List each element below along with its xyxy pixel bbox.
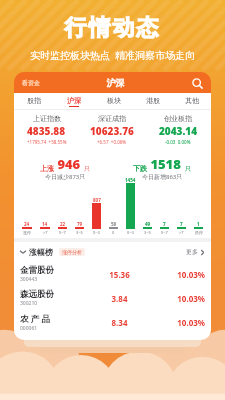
staticText: 今日减少873只: [45, 173, 86, 181]
staticText: 5~7: [59, 230, 66, 235]
button[interactable]: 上涨: [18, 151, 112, 185]
staticText: >7: [43, 230, 48, 235]
staticText: 5~7: [161, 230, 168, 235]
button[interactable]: 创业板指: [145, 114, 211, 145]
button[interactable]: 农 产 品: [14, 310, 211, 335]
staticText: 7: [163, 221, 166, 227]
staticText: 10623.76: [90, 124, 134, 138]
staticText: 沪深: [67, 96, 81, 105]
staticText: 沪深: [42, 77, 189, 88]
button[interactable]: 深证成指: [79, 114, 145, 145]
staticText: 上证指数: [33, 114, 61, 123]
button[interactable]: 其他: [172, 96, 211, 107]
staticText: 24: [24, 221, 30, 227]
staticText: 7: [180, 221, 183, 227]
staticText: +6.57 +0.06%: [97, 139, 127, 145]
button[interactable]: Search: [189, 75, 205, 91]
staticText: 15.36: [91, 269, 148, 280]
staticText: 上涨: [40, 164, 54, 173]
staticText: >7: [179, 230, 184, 235]
staticText: 只: [84, 165, 90, 173]
staticText: 涨停分析: [62, 249, 82, 255]
staticText: 14: [42, 221, 48, 227]
button[interactable]: 港股: [133, 96, 172, 107]
staticText: 49: [145, 221, 151, 227]
staticText: 只: [185, 165, 191, 173]
staticText: 22: [60, 221, 66, 227]
staticText: 涨停: [23, 230, 31, 235]
staticText: 1454: [125, 177, 136, 183]
staticText: 0~3: [93, 230, 100, 235]
staticText: 下跌: [133, 164, 147, 173]
staticText: 跌停: [195, 230, 203, 235]
staticText: 946: [54, 155, 84, 173]
staticText: 港股: [146, 96, 160, 105]
staticText: 000061: [20, 325, 38, 332]
staticText: 10.03%: [148, 317, 205, 328]
staticText: 2043.14: [159, 124, 198, 138]
staticText: 实时监控板块热点 精准洞察市场走向: [0, 48, 225, 62]
button[interactable]: 下跌: [112, 151, 211, 185]
staticText: 森远股份: [20, 289, 54, 300]
staticText: 8.34: [91, 317, 148, 328]
staticText: 板块: [107, 96, 121, 105]
staticText: 10.03%: [148, 269, 205, 280]
staticText: 79: [77, 221, 83, 227]
button[interactable]: 森远股份: [14, 286, 211, 310]
staticText: 1: [197, 221, 200, 227]
staticText: 更多: [186, 248, 198, 256]
staticText: 金雷股份: [20, 265, 54, 276]
staticText: -0.03 0.00%: [165, 139, 191, 145]
staticText: 0~3: [127, 230, 134, 235]
staticText: 涨幅榜: [29, 247, 53, 257]
staticText: 3.84: [91, 293, 148, 304]
staticText: 58: [111, 221, 117, 227]
staticText: 创业板指: [164, 114, 192, 123]
staticText: 3~5: [76, 230, 83, 235]
button[interactable]: 金雷股份: [14, 262, 211, 286]
staticText: 0: [112, 230, 115, 235]
staticText: 300443: [20, 276, 38, 283]
staticText: 行情动态: [0, 14, 225, 42]
staticText: 农 产 品: [20, 313, 50, 325]
staticText: +1795.74 +58.55%: [27, 139, 67, 145]
staticText: 其他: [185, 96, 199, 105]
staticText: 股指: [27, 96, 41, 105]
button[interactable]: 股指: [14, 96, 54, 107]
staticText: 807: [93, 197, 101, 203]
button[interactable]: 涨幅榜: [14, 242, 211, 262]
staticText: 300210: [20, 300, 38, 307]
button[interactable]: 板块: [94, 96, 133, 107]
button[interactable]: 看资金: [20, 77, 42, 89]
staticText: 1518: [147, 155, 185, 173]
staticText: 深证成指: [98, 114, 126, 123]
staticText: 3~5: [144, 230, 151, 235]
staticText: 4835.88: [27, 124, 66, 138]
staticText: 今日新增863只: [142, 173, 183, 181]
staticText: 10.03%: [148, 293, 205, 304]
staticText: 看资金: [22, 79, 40, 87]
button[interactable]: 沪深: [54, 96, 94, 107]
button[interactable]: 上证指数: [14, 114, 79, 145]
